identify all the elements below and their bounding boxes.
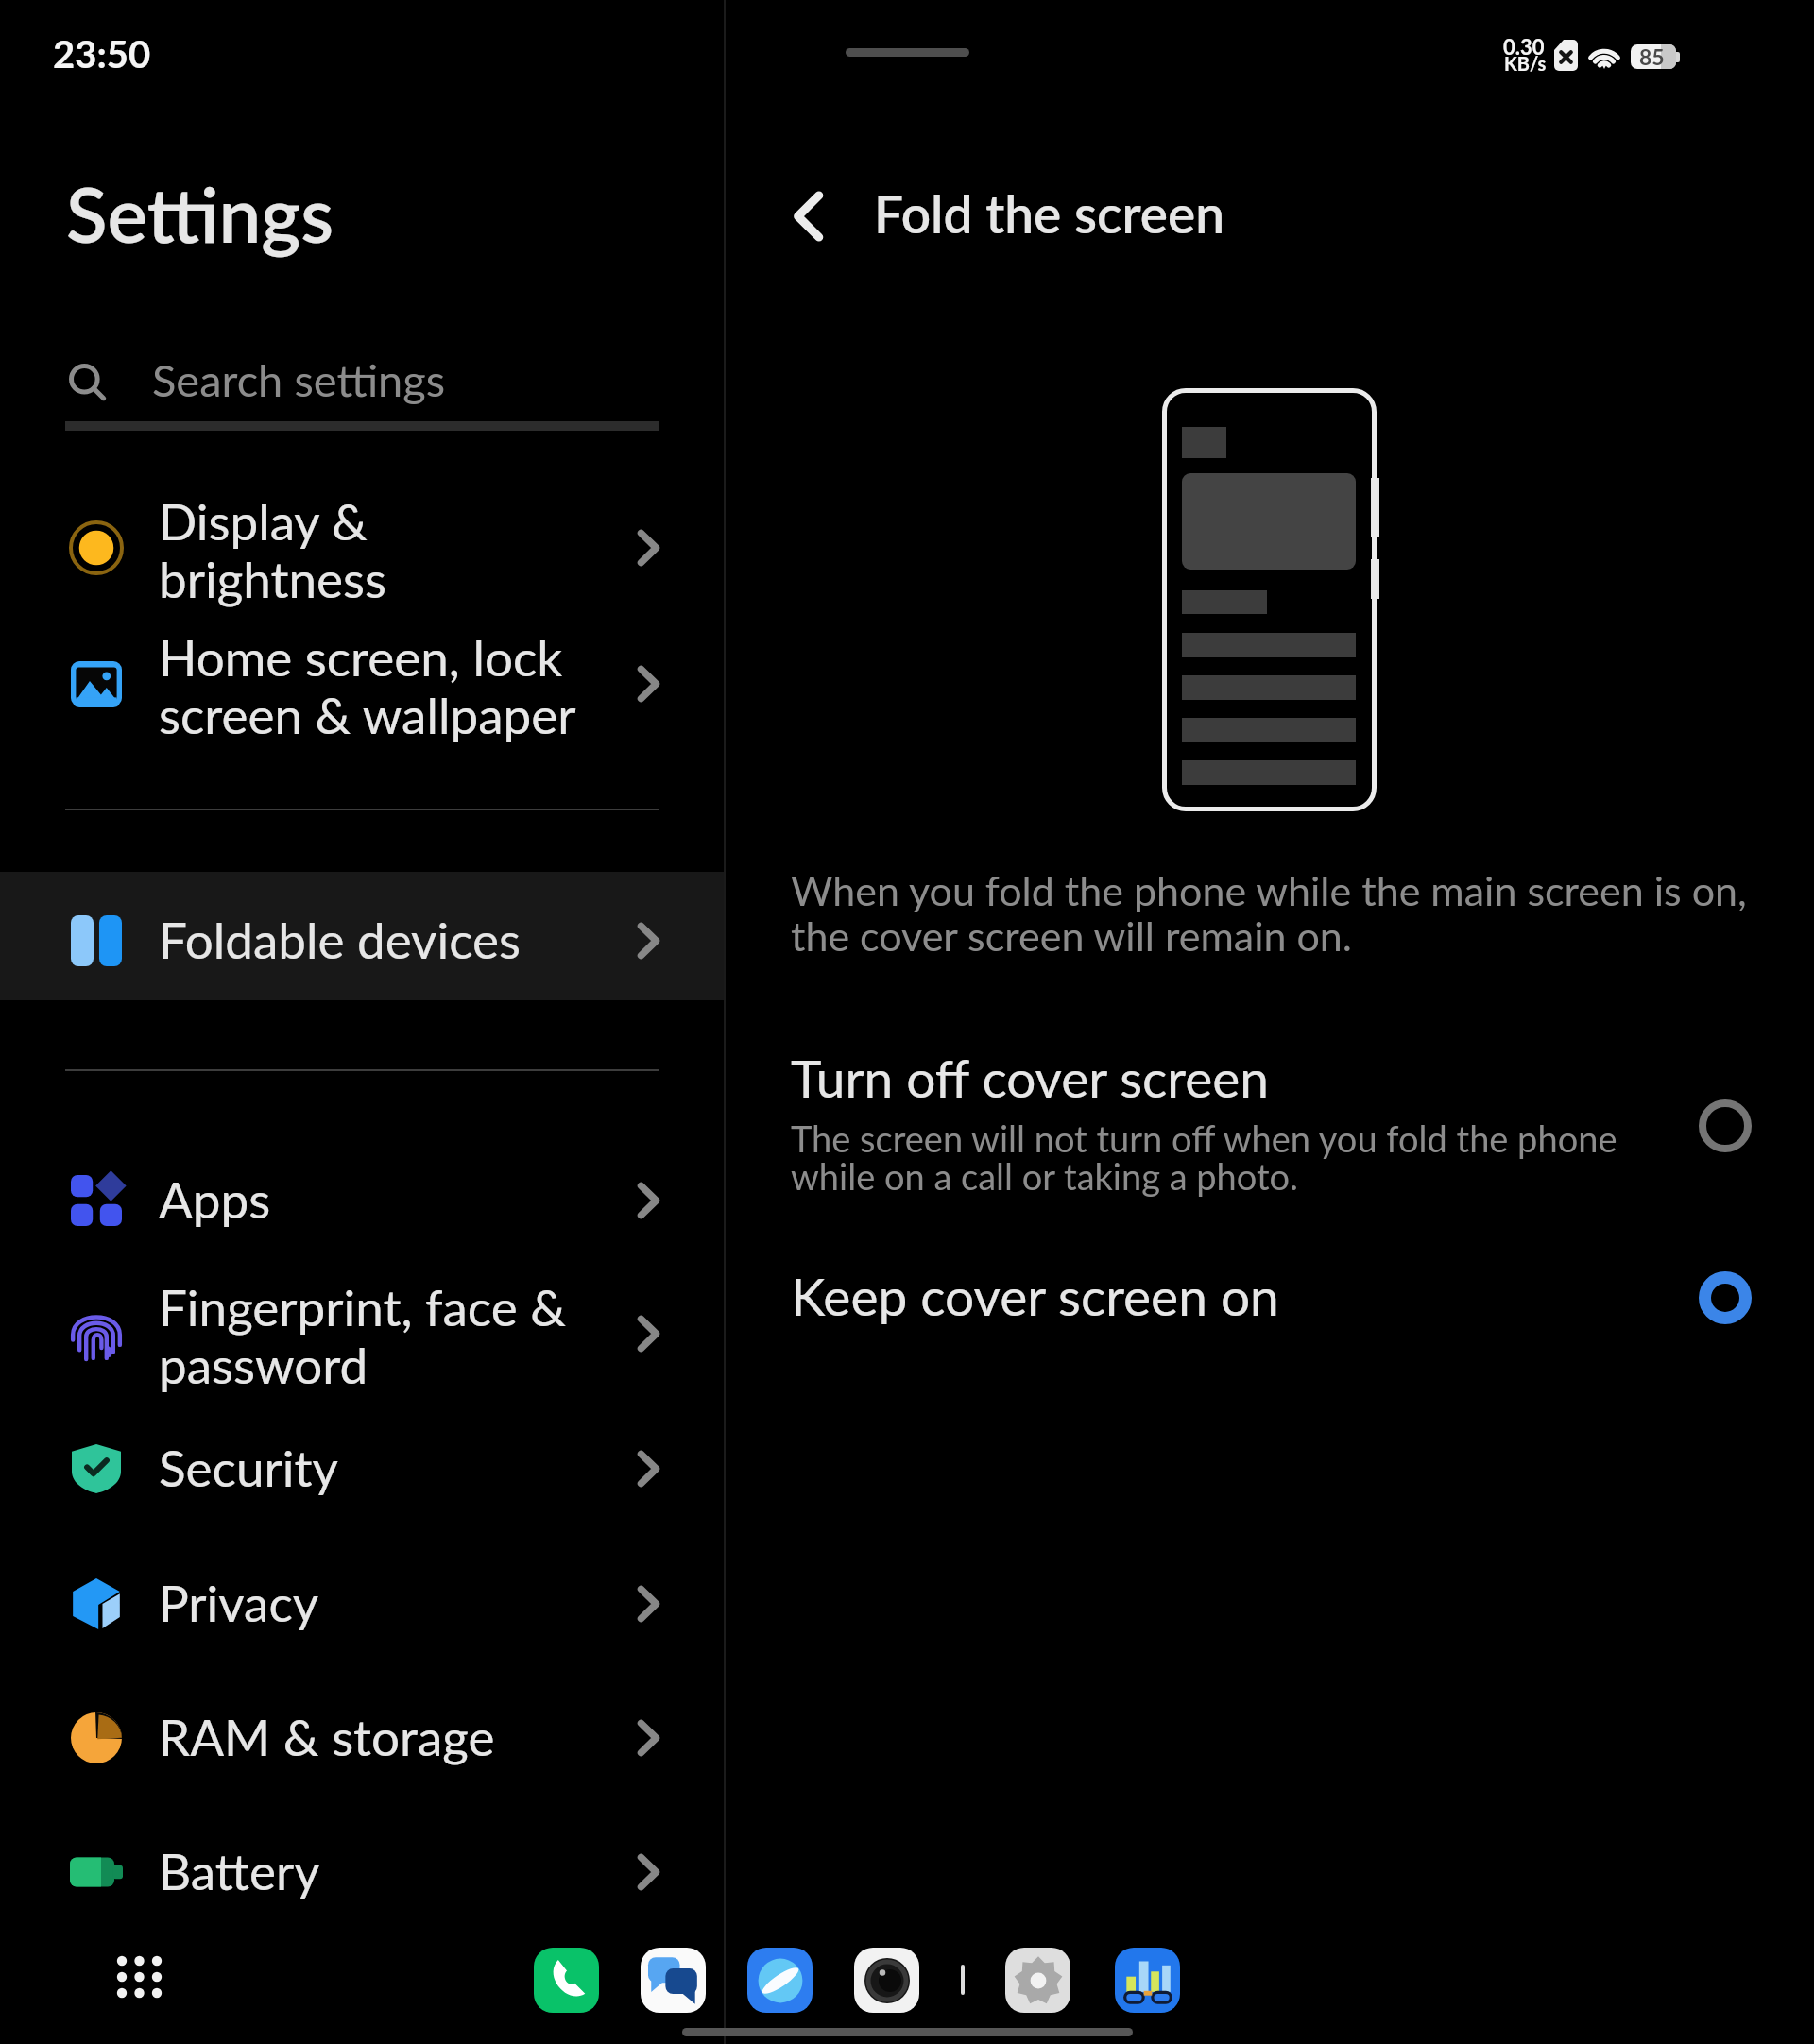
staticText: Fold the screen <box>874 182 1225 245</box>
staticText: Fingerprint, face & <box>159 1277 566 1337</box>
staticText: Apps <box>159 1169 271 1230</box>
button[interactable]: Apps <box>0 1148 724 1253</box>
button[interactable]: Turn off cover screen <box>756 1039 1786 1195</box>
staticText: When you fold the phone while the main s… <box>791 866 1747 915</box>
staticText: 85 <box>1639 43 1665 68</box>
staticText: Settings <box>66 168 334 259</box>
staticText: Keep cover screen on <box>791 1265 1279 1327</box>
staticText: Turn off cover screen <box>791 1047 1269 1109</box>
button[interactable]: Keep cover screen on <box>756 1256 1786 1346</box>
button[interactable]: Privacy <box>0 1551 724 1657</box>
staticText: Foldable devices <box>159 910 521 970</box>
staticText: The screen will not turn off when you fo… <box>791 1116 1617 1160</box>
staticText: Display & <box>159 491 368 552</box>
button[interactable]: Search settings <box>65 351 651 414</box>
button[interactable]: Browser <box>747 1948 813 2013</box>
button[interactable]: Camera <box>854 1948 919 2013</box>
staticText: the cover screen will remain on. <box>791 911 1353 961</box>
button[interactable]: Security <box>0 1416 724 1522</box>
staticText: Privacy <box>159 1573 319 1633</box>
button[interactable]: Settings <box>1005 1948 1070 2013</box>
staticText: Battery <box>159 1841 320 1901</box>
staticText: password <box>159 1335 368 1395</box>
staticText: 0.30 <box>1503 34 1545 59</box>
staticText: Security <box>159 1438 338 1498</box>
button[interactable]: Home screen, lock screen & wallpaper <box>0 620 724 748</box>
staticText: screen & wallpaper <box>159 685 576 745</box>
staticText: 23:50 <box>53 31 151 77</box>
button[interactable]: Back <box>773 179 845 253</box>
button[interactable]: Display & brightness <box>0 484 724 612</box>
button[interactable]: Statistics <box>1115 1948 1180 2013</box>
staticText: while on a call or taking a photo. <box>791 1154 1299 1198</box>
button[interactable]: Battery <box>0 1819 724 1925</box>
staticText: KB/s <box>1504 52 1547 75</box>
button[interactable]: Phone <box>534 1948 599 2013</box>
button[interactable]: All apps <box>109 1948 177 2016</box>
button[interactable]: Messages <box>641 1948 706 2013</box>
staticText: Home screen, lock <box>159 627 563 688</box>
staticText: RAM & storage <box>159 1707 495 1767</box>
button[interactable]: Foldable devices <box>0 888 724 994</box>
staticText: Search settings <box>152 353 446 406</box>
button[interactable]: RAM & storage <box>0 1685 724 1791</box>
button[interactable]: Fingerprint, face & password <box>0 1269 724 1398</box>
staticText: brightness <box>159 549 386 609</box>
